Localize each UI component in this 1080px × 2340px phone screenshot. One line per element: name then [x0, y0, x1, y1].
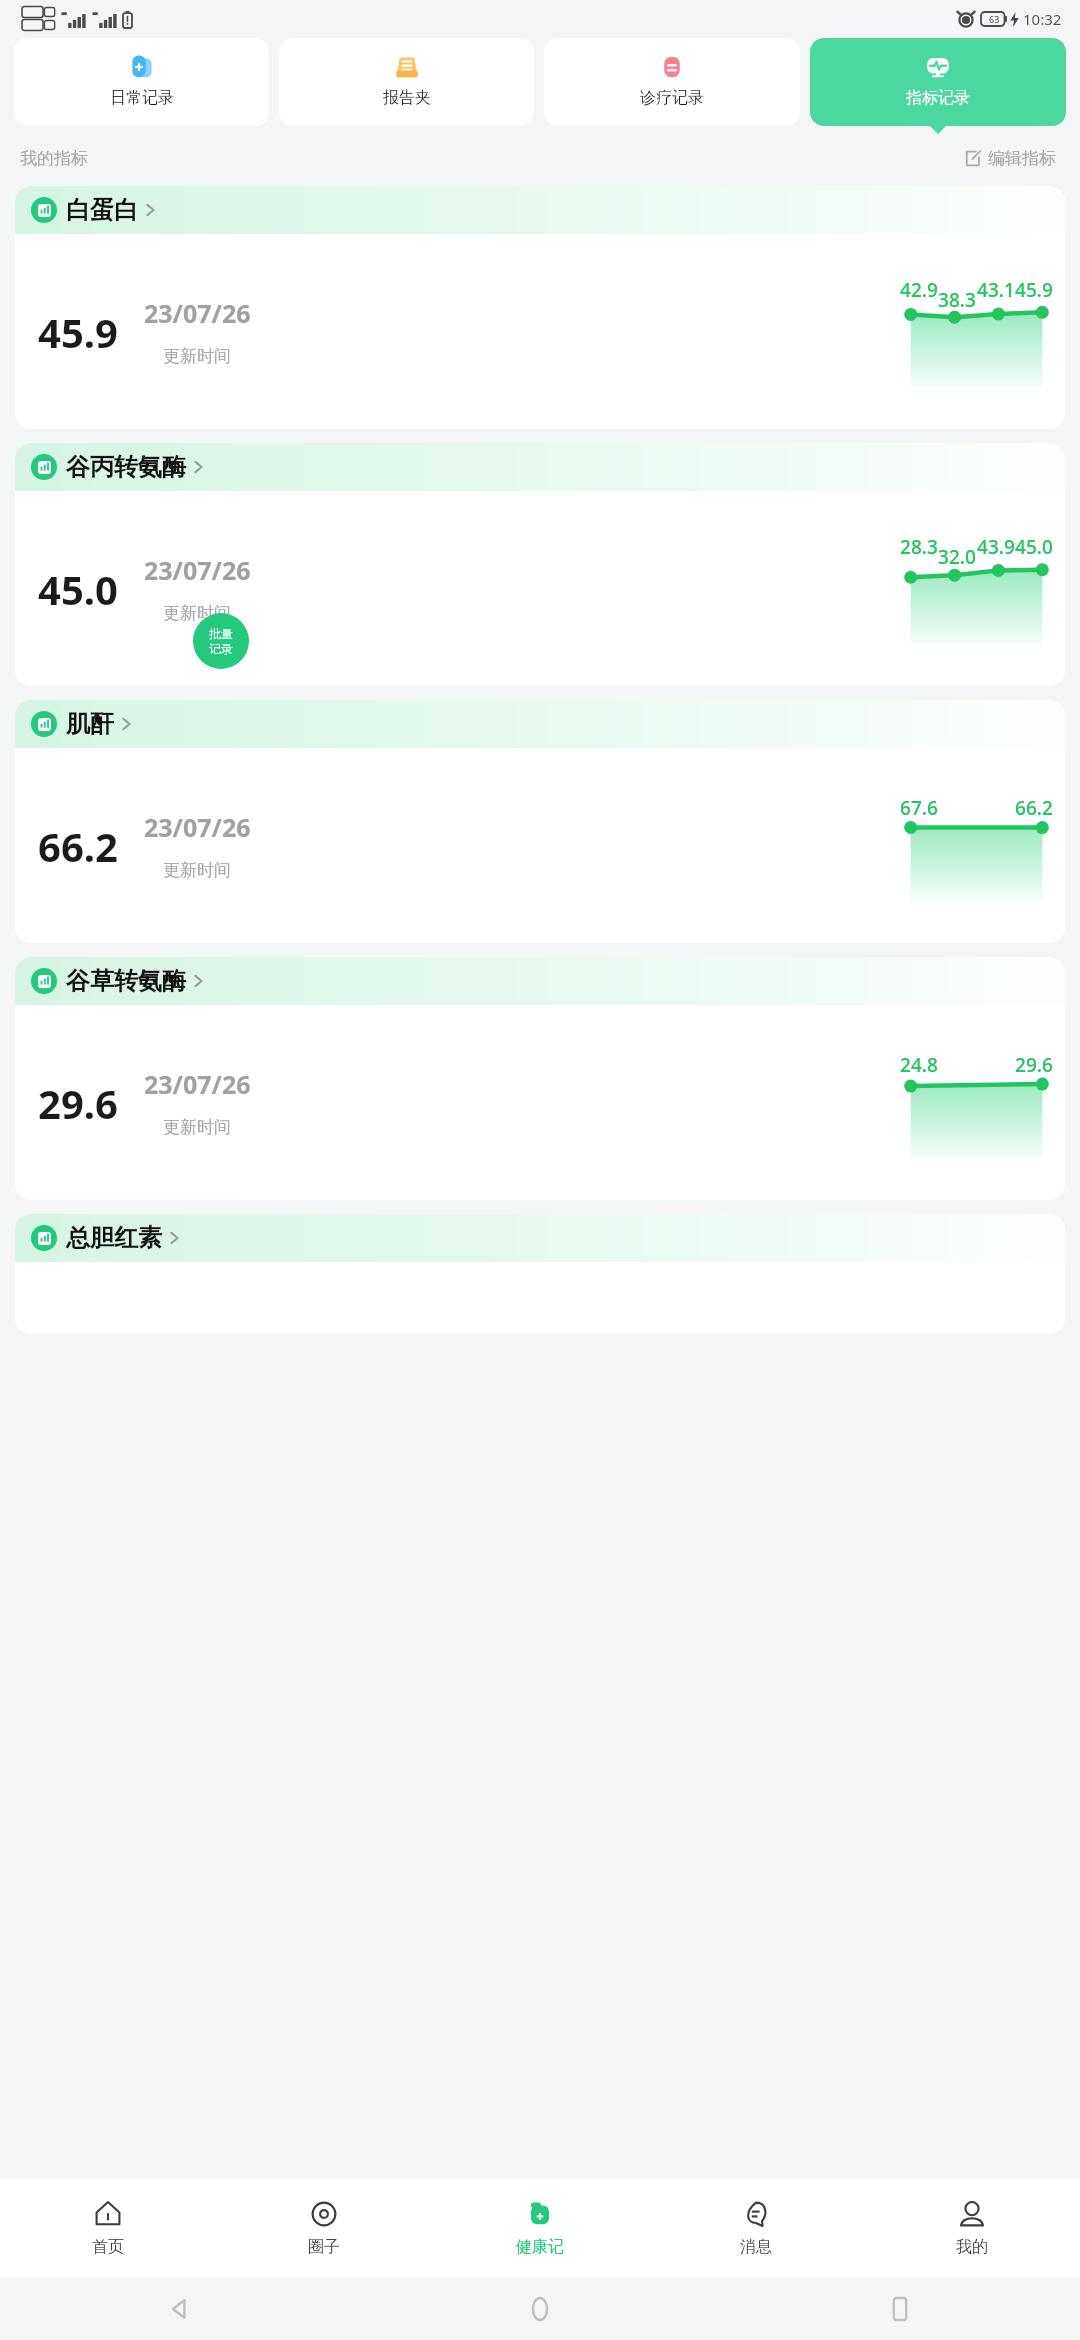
staticText: 43.1 [977, 277, 1015, 303]
button[interactable]: 编辑指标 [960, 144, 1060, 173]
staticText: 24.8 [900, 1052, 938, 1078]
button[interactable]: 谷丙转氨酶 [15, 443, 1065, 686]
button[interactable]: 我的 [864, 2178, 1080, 2278]
button[interactable]: 圈子 [216, 2178, 432, 2278]
button[interactable]: Back [0, 2278, 360, 2340]
staticText: 圈子 [308, 2237, 340, 2257]
button[interactable]: 健康记 [432, 2178, 648, 2278]
staticText: 更新时间 [163, 346, 231, 367]
button[interactable]: 谷草转氨酶 [15, 957, 1065, 1200]
button[interactable]: 肌酐 [15, 700, 1065, 943]
staticText: 66.2 [1015, 795, 1053, 821]
staticText: 总胆红素 [66, 1223, 162, 1253]
staticText: 白蛋白 [66, 195, 138, 225]
staticText: 45.9 [1015, 277, 1053, 303]
button[interactable]: 白蛋白 [15, 186, 1065, 429]
button[interactable]: 指标记录 [810, 38, 1066, 134]
button[interactable]: Home [360, 2278, 720, 2340]
staticText: 67.6 [900, 795, 938, 821]
button[interactable]: Recents [720, 2278, 1080, 2340]
staticText: 45.0 [38, 562, 118, 616]
button[interactable]: 诊疗记录 [544, 38, 800, 126]
staticText: 记录 [209, 641, 233, 656]
staticText: 首页 [92, 2237, 124, 2257]
staticText: 29.6 [38, 1076, 118, 1130]
staticText: 38.3 [938, 287, 976, 307]
button[interactable]: 首页 [0, 2178, 216, 2278]
staticText: 23/07/26 [144, 1067, 251, 1101]
button[interactable]: 总胆红素 [15, 1214, 1065, 1334]
staticText: 日常记录 [110, 88, 174, 108]
staticText: 批量 [209, 626, 233, 641]
staticText: 32.0 [938, 544, 976, 564]
staticText: 23/07/26 [144, 810, 251, 844]
staticText: 消息 [740, 2237, 772, 2257]
staticText: 63 [989, 13, 1000, 25]
staticText: 28.3 [900, 534, 938, 560]
staticText: 健康记 [516, 2237, 564, 2257]
staticText: 43.9 [977, 534, 1015, 560]
staticText: 10:32 [1023, 9, 1062, 29]
staticText: 指标记录 [906, 88, 970, 108]
staticText: 29.6 [1015, 1052, 1053, 1078]
staticText: 23/07/26 [144, 296, 251, 330]
staticText: 更新时间 [163, 860, 231, 881]
staticText: 我的 [956, 2237, 988, 2257]
staticText: 更新时间 [163, 603, 231, 624]
staticText: 报告夹 [383, 88, 431, 108]
staticText: 编辑指标 [988, 148, 1056, 169]
staticText: 23/07/26 [144, 553, 251, 587]
staticText: 诊疗记录 [640, 88, 704, 108]
staticText: 谷丙转氨酶 [66, 452, 186, 482]
staticText: 我的指标 [20, 148, 88, 169]
staticText: 45.9 [38, 305, 118, 359]
staticText: 66.2 [38, 819, 118, 873]
button[interactable]: 日常记录 [14, 38, 269, 126]
staticText: 肌酐 [66, 709, 114, 739]
button[interactable]: 消息 [648, 2178, 864, 2278]
staticText: 45.0 [1015, 534, 1053, 560]
staticText: 谷草转氨酶 [66, 966, 186, 996]
button[interactable]: 报告夹 [279, 38, 534, 126]
button[interactable]: 批量 [193, 613, 249, 669]
staticText: 更新时间 [163, 1117, 231, 1138]
staticText: 42.9 [900, 277, 938, 303]
